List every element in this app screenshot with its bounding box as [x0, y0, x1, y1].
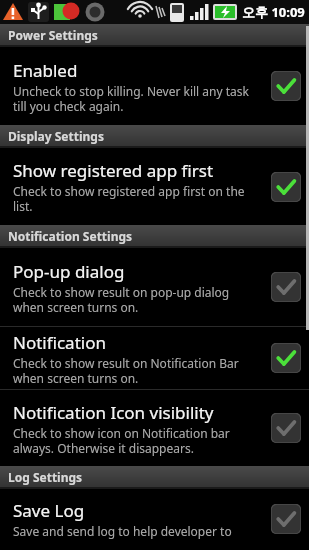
button[interactable]: Notification [0, 327, 309, 389]
staticText: Check to show result on pop-up dialog wh… [13, 284, 263, 315]
staticText: Save Log [13, 499, 85, 522]
staticText: Save and send log to help developer to [13, 523, 232, 539]
staticText: Notification [13, 331, 106, 354]
staticText: Notification Icon visibility [13, 401, 214, 424]
staticText: Show registered app first [13, 159, 214, 182]
staticText: Pop-up dialog [13, 260, 125, 283]
button[interactable]: Checked [271, 172, 301, 202]
button[interactable]: Notification Icon visibility [0, 390, 309, 466]
button[interactable]: Unchecked [271, 413, 301, 443]
staticText: Enabled [13, 59, 78, 82]
button[interactable]: Enabled [0, 47, 309, 125]
staticText: Uncheck to stop killing. Never kill any … [13, 83, 263, 114]
staticText: Check to show icon on Notification bar a… [13, 425, 263, 456]
staticText: 오후 10:09 [242, 3, 305, 21]
button[interactable]: Checked [271, 71, 301, 101]
staticText: Display Settings [8, 128, 104, 144]
staticText: Log Settings [8, 469, 83, 485]
button[interactable]: Show registered app first [0, 148, 309, 225]
button[interactable]: Unchecked [271, 504, 301, 534]
staticText: Check to show result on Notification Bar… [13, 355, 263, 386]
button[interactable]: Checked [271, 343, 301, 373]
staticText: Power Settings [8, 27, 98, 43]
staticText: Check to show registered app first on th… [13, 183, 263, 214]
button[interactable]: Save Log [0, 489, 309, 549]
staticText: Notification Settings [8, 228, 133, 244]
button[interactable]: Unchecked [271, 272, 301, 302]
button[interactable]: Pop-up dialog [0, 248, 309, 326]
